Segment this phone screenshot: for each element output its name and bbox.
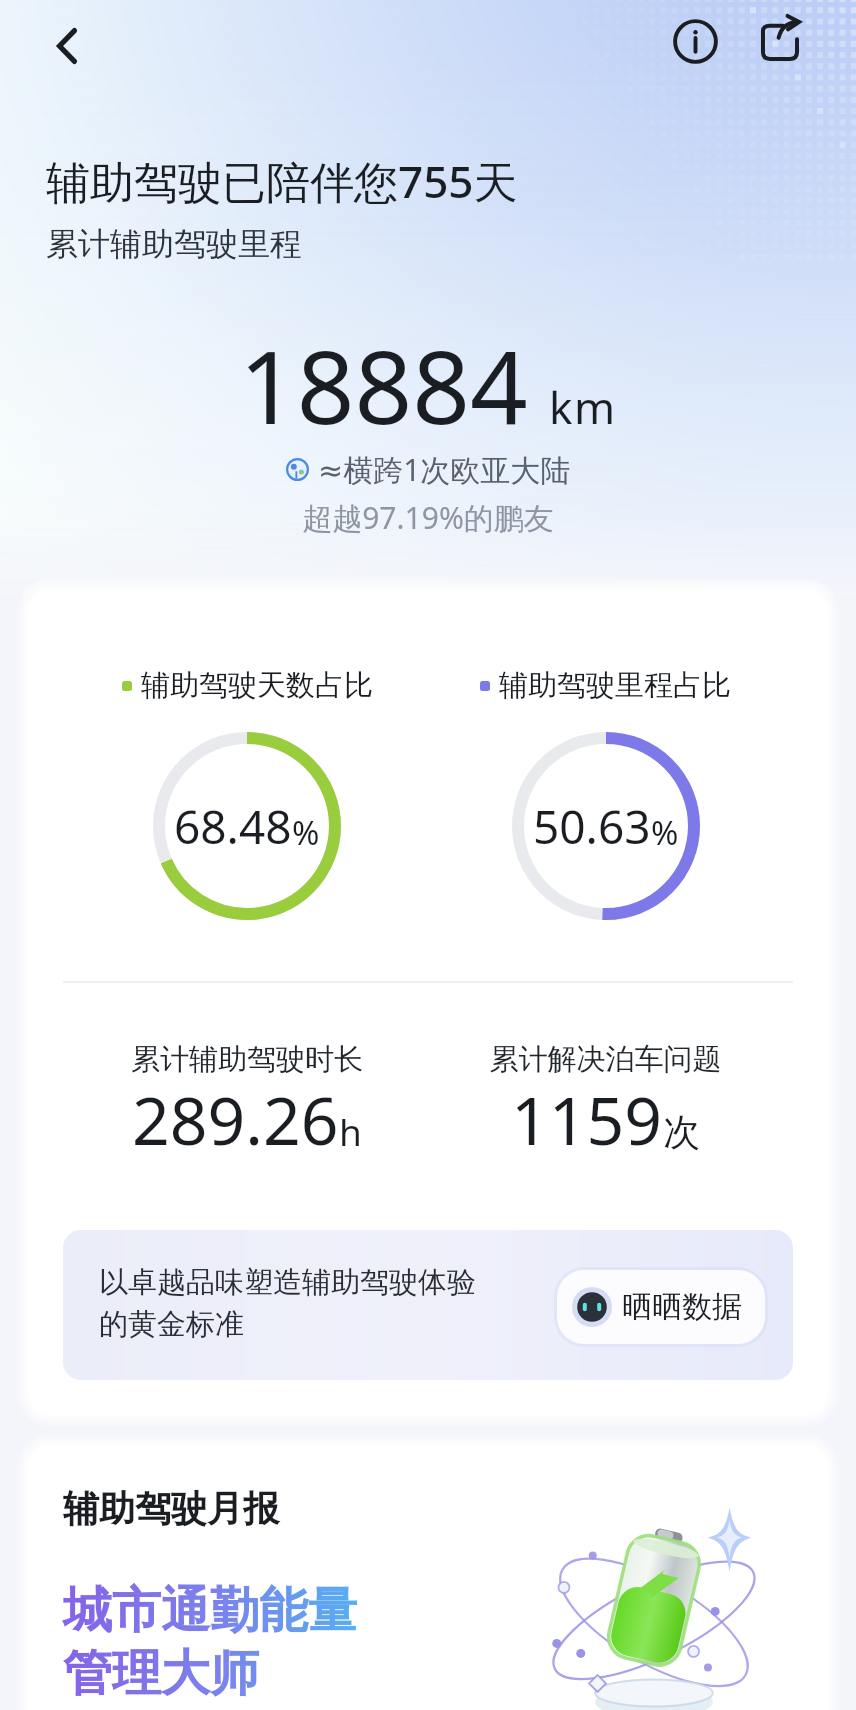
staticText: 城市通勤能量 管理大师 [63,1580,357,1705]
staticText: 辅助驾驶月报 [63,1486,279,1531]
staticText: km [549,377,617,437]
staticText: 以卓越品味塑造辅助驾驶体验 的黄金标准 [99,1264,476,1343]
staticText: h [339,1106,362,1156]
staticText: 68.48 [174,795,292,858]
button[interactable]: Share [753,14,807,68]
button[interactable]: Back [42,21,92,71]
staticText: 累计辅助驾驶里程 [46,224,302,264]
staticText: 辅助驾驶已陪伴您755天 [46,151,518,211]
staticText: 次 [663,1109,700,1156]
staticText: 1159 [511,1074,663,1164]
staticText: 超越97.19%的鹏友 [0,497,856,538]
staticText: 辅助驾驶天数占比 [141,667,373,704]
staticText: 18884 [239,316,528,454]
button[interactable]: Info [668,14,722,68]
staticText: ≈横跨1次欧亚大陆 [318,449,571,490]
button[interactable]: 晒晒数据 [557,1270,765,1344]
staticText: 289.26 [132,1074,339,1164]
staticText: 累计解决泊车问题 [426,1041,785,1078]
staticText: % [292,810,320,855]
staticText: % [651,810,679,855]
staticText: 50.63 [533,795,651,858]
staticText: 晒晒数据 [622,1288,742,1326]
staticText: 辅助驾驶里程占比 [499,667,731,704]
staticText: 累计辅助驾驶时长 [68,1041,426,1078]
